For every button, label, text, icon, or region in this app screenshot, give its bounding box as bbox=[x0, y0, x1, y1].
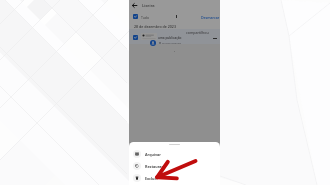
staticText: 28 dias restantes bbox=[162, 41, 182, 44]
button[interactable]: Selected bbox=[133, 35, 138, 40]
staticText: Excluir bbox=[145, 176, 158, 181]
staticText: compartilhou bbox=[186, 30, 209, 35]
staticText: 28 de dezembro de 2023 bbox=[134, 24, 176, 29]
staticText: Arquivar bbox=[145, 152, 161, 157]
staticText: Lixeira bbox=[142, 3, 155, 8]
button[interactable]: Desmarcar bbox=[201, 15, 220, 20]
button[interactable]: Selected bbox=[133, 14, 138, 19]
button[interactable]: Arquivar bbox=[129, 148, 220, 160]
button[interactable]: Restaurar bbox=[129, 160, 220, 172]
staticText: uma publicação bbox=[158, 36, 182, 40]
button[interactable]: Back bbox=[130, 1, 138, 9]
staticText: Tudo bbox=[141, 15, 149, 20]
button[interactable]: Excluir bbox=[129, 172, 220, 184]
staticText: Restaurar bbox=[145, 164, 164, 169]
